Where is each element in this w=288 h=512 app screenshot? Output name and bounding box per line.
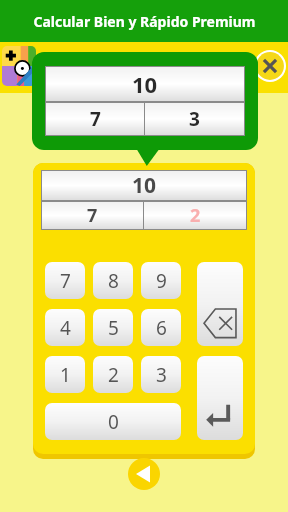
staticText: 0 [108,409,119,435]
button[interactable]: 10 [32,52,258,150]
button[interactable]: Backspace [197,262,243,346]
button[interactable]: 1 [45,356,85,393]
staticText: 3 [189,106,200,132]
button[interactable]: Close [254,50,286,82]
staticText: 5 [108,315,119,341]
button[interactable]: Back [128,458,160,490]
button[interactable]: 4 [45,309,85,346]
button[interactable]: Enter [197,356,243,440]
button[interactable]: 7 [45,262,85,299]
button[interactable]: 5 [93,309,133,346]
staticText: 2 [108,362,119,388]
staticText: 7 [60,268,71,294]
staticText: 7 [87,203,98,228]
button[interactable]: 2 [93,356,133,393]
staticText: 3 [156,362,167,388]
button[interactable]: App icon [2,46,36,86]
staticText: 1 [60,362,71,388]
staticText: 6 [156,315,167,341]
staticText: 10 [132,69,158,99]
staticText: 4 [60,315,71,341]
staticText: 10 [132,171,157,200]
button[interactable]: 3 [141,356,181,393]
button[interactable]: 8 [93,262,133,299]
staticText: 2 [190,203,201,228]
staticText: 8 [108,268,119,294]
button[interactable]: 6 [141,309,181,346]
staticText: 7 [90,106,101,132]
button[interactable]: 9 [141,262,181,299]
staticText: Calcular Bien y Rápido Premium [33,12,256,31]
button[interactable]: 0 [45,403,181,440]
staticText: 9 [156,268,167,294]
